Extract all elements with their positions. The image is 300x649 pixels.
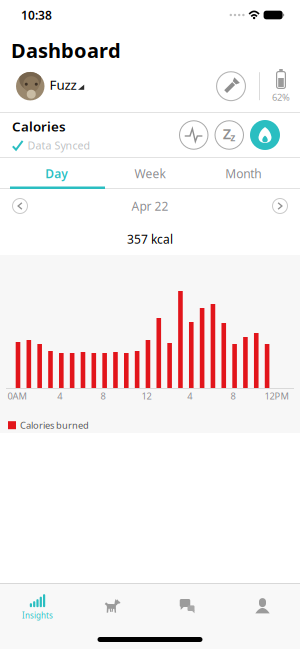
staticText: 62% <box>272 91 290 103</box>
staticText: Dashboard <box>11 37 121 64</box>
button[interactable]: Next day <box>272 198 300 214</box>
staticText: z <box>230 130 235 144</box>
button[interactable]: Messages <box>150 591 225 621</box>
staticText: Data Synced <box>27 138 90 152</box>
staticText: Insights <box>22 610 53 621</box>
button[interactable]: Find light <box>216 71 246 101</box>
staticText: Day <box>45 165 68 181</box>
staticText: 4 <box>187 390 192 402</box>
staticText: Month <box>225 165 261 181</box>
button[interactable]: Fuzz <box>0 72 88 100</box>
staticText: 12 <box>141 390 151 402</box>
staticText: 8 <box>230 390 235 402</box>
staticText: 10:38 <box>21 7 52 23</box>
button[interactable]: Insights <box>0 591 75 621</box>
staticText: 4 <box>57 390 62 402</box>
staticText: 0AM <box>7 390 26 402</box>
button[interactable]: Dogs <box>75 591 150 621</box>
button[interactable]: Month <box>197 165 290 181</box>
button[interactable]: Profile <box>225 591 300 621</box>
staticText: Calories <box>12 118 66 135</box>
button[interactable]: Calories <box>250 120 280 150</box>
button[interactable]: Week <box>103 165 197 181</box>
staticText: Calories burned <box>20 419 89 431</box>
staticText: Apr 22 <box>131 198 168 214</box>
button[interactable]: Activity <box>179 120 208 150</box>
button[interactable]: Sleep <box>214 120 244 150</box>
staticText: 8 <box>101 390 106 402</box>
button[interactable]: Previous day <box>0 198 28 214</box>
staticText: Z <box>223 124 231 143</box>
staticText: 357 kcal <box>127 231 173 247</box>
staticText: Fuzz <box>49 76 76 93</box>
button[interactable]: Day <box>10 165 103 181</box>
staticText: 12PM <box>264 390 288 402</box>
staticText: Week <box>134 165 165 181</box>
